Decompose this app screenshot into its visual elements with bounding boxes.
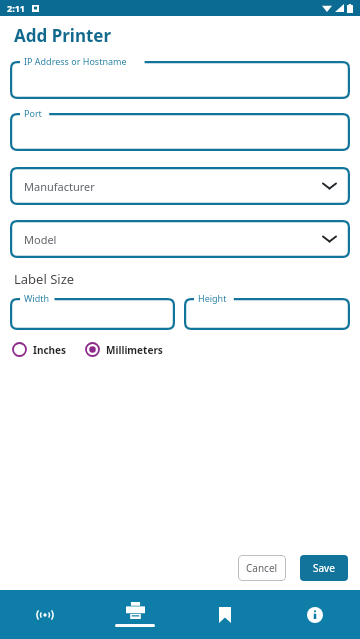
button[interactable]: Model xyxy=(10,214,350,258)
staticText: Save xyxy=(313,561,335,575)
staticText: Inches xyxy=(33,343,67,357)
button[interactable]: Saved xyxy=(180,590,270,639)
button[interactable]: Height xyxy=(184,292,350,330)
staticText: IP Address or Hostname xyxy=(24,55,127,67)
button[interactable]: Width xyxy=(10,292,175,330)
button[interactable]: Port xyxy=(10,107,350,151)
button[interactable]: Discover printers xyxy=(0,590,90,639)
button[interactable]: Printers xyxy=(90,590,180,639)
staticText: 2:11 xyxy=(7,2,25,14)
button[interactable]: Inches xyxy=(10,339,69,360)
button[interactable]: Cancel xyxy=(238,555,286,581)
staticText: Label Size xyxy=(14,270,75,288)
staticText: Model xyxy=(24,232,57,247)
button[interactable]: IP Address or Hostname xyxy=(10,55,350,99)
button[interactable]: Millimeters xyxy=(83,339,165,360)
staticText: Height xyxy=(198,292,227,304)
button[interactable]: Manufacturer xyxy=(10,161,350,205)
staticText: Port xyxy=(24,107,42,119)
staticText: Width xyxy=(24,292,50,304)
staticText: Add Printer xyxy=(14,24,112,47)
staticText: Millimeters xyxy=(106,343,163,357)
button[interactable]: Save xyxy=(300,555,348,581)
button[interactable]: Info xyxy=(270,590,360,639)
staticText: Cancel xyxy=(246,561,278,575)
staticText: Manufacturer xyxy=(24,179,95,194)
